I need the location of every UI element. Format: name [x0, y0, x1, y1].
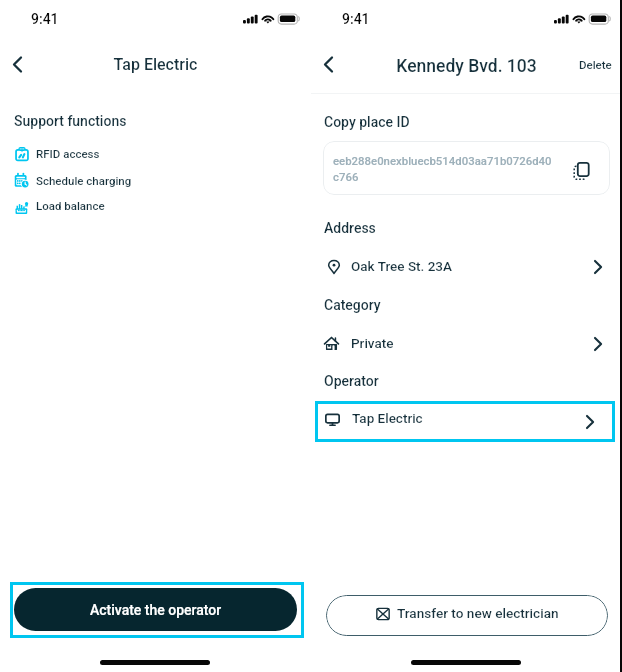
staticText: Delete	[579, 58, 612, 71]
staticText: RFID access	[36, 147, 100, 160]
button[interactable]: Load balance	[8, 193, 208, 217]
staticText: Tap Electric	[352, 410, 423, 426]
staticText: Private	[351, 335, 394, 351]
staticText: Transfer to new electrician	[397, 605, 559, 621]
button[interactable]: Back	[0, 45, 36, 81]
staticText: Category	[324, 297, 381, 313]
button[interactable]: Oak Tree St. 23A	[319, 250, 615, 284]
staticText: Tap Electric	[0, 55, 311, 74]
staticText: eeb288e0nexbluecb514d03aa71b0726d40c766	[333, 154, 557, 184]
button[interactable]: eeb288e0nexbluecb514d03aa71b0726d40c766	[323, 141, 610, 195]
button[interactable]: Private	[319, 327, 615, 361]
staticText: Activate the operator	[90, 602, 222, 618]
button[interactable]: Copy place ID	[566, 154, 592, 180]
button[interactable]: Tap Electric	[315, 401, 615, 442]
staticText: Address	[324, 220, 376, 236]
button[interactable]: Delete	[573, 49, 617, 79]
staticText: Operator	[324, 373, 379, 389]
button[interactable]: Schedule charging	[8, 168, 208, 192]
button[interactable]: Transfer to new electrician	[326, 595, 608, 636]
staticText: Schedule charging	[36, 174, 132, 187]
staticText: 9:41	[342, 11, 370, 27]
staticText: Oak Tree St. 23A	[351, 258, 452, 274]
staticText: Support functions	[14, 113, 127, 129]
staticText: 9:41	[31, 11, 59, 27]
staticText: Load balance	[36, 199, 105, 212]
staticText: Kennedy Bvd. 103	[311, 56, 622, 77]
button[interactable]: RFID access	[8, 141, 208, 165]
button[interactable]: Activate the operator	[14, 588, 297, 631]
staticText: Copy place ID	[324, 114, 410, 130]
button[interactable]: Back	[311, 45, 347, 81]
